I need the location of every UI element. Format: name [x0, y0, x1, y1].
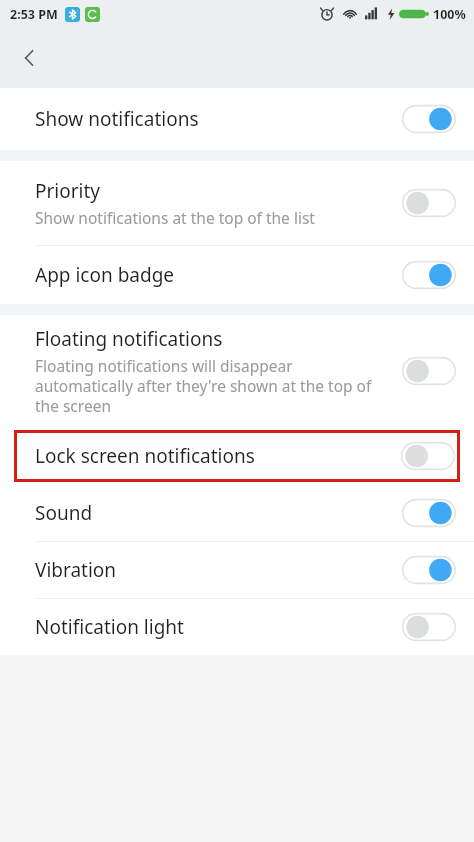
button[interactable]: Off: [402, 356, 456, 386]
staticText: Floating notifications: [35, 326, 223, 352]
button[interactable]: Off: [402, 612, 456, 642]
staticText: 2:53 PM: [10, 6, 58, 23]
staticText: Priority: [35, 178, 101, 204]
button[interactable]: Vibration: [0, 542, 474, 598]
staticText: Show notifications at the top of the lis…: [35, 207, 315, 228]
button[interactable]: Notification light: [0, 599, 474, 655]
staticText: Vibration: [35, 557, 117, 583]
button[interactable]: On: [402, 498, 456, 528]
button[interactable]: Lock screen notifications: [14, 430, 460, 482]
button[interactable]: Back: [8, 36, 52, 80]
button[interactable]: On: [402, 260, 456, 290]
button[interactable]: Sound: [0, 485, 474, 541]
button[interactable]: Floating notifications: [0, 315, 474, 427]
staticText: Notification light: [35, 614, 184, 640]
staticText: Floating notifications will disappear au…: [35, 355, 392, 416]
button[interactable]: On: [402, 104, 456, 134]
staticText: Sound: [35, 500, 93, 526]
button[interactable]: Off: [402, 188, 456, 218]
staticText: Lock screen notifications: [35, 443, 401, 469]
button[interactable]: App icon badge: [0, 246, 474, 304]
button[interactable]: Priority: [0, 161, 474, 245]
button[interactable]: Off: [401, 441, 455, 471]
button[interactable]: Show notifications: [0, 88, 474, 150]
staticText: App icon badge: [35, 262, 175, 288]
button[interactable]: On: [402, 555, 456, 585]
staticText: 100%: [433, 6, 466, 23]
staticText: Show notifications: [35, 106, 199, 132]
